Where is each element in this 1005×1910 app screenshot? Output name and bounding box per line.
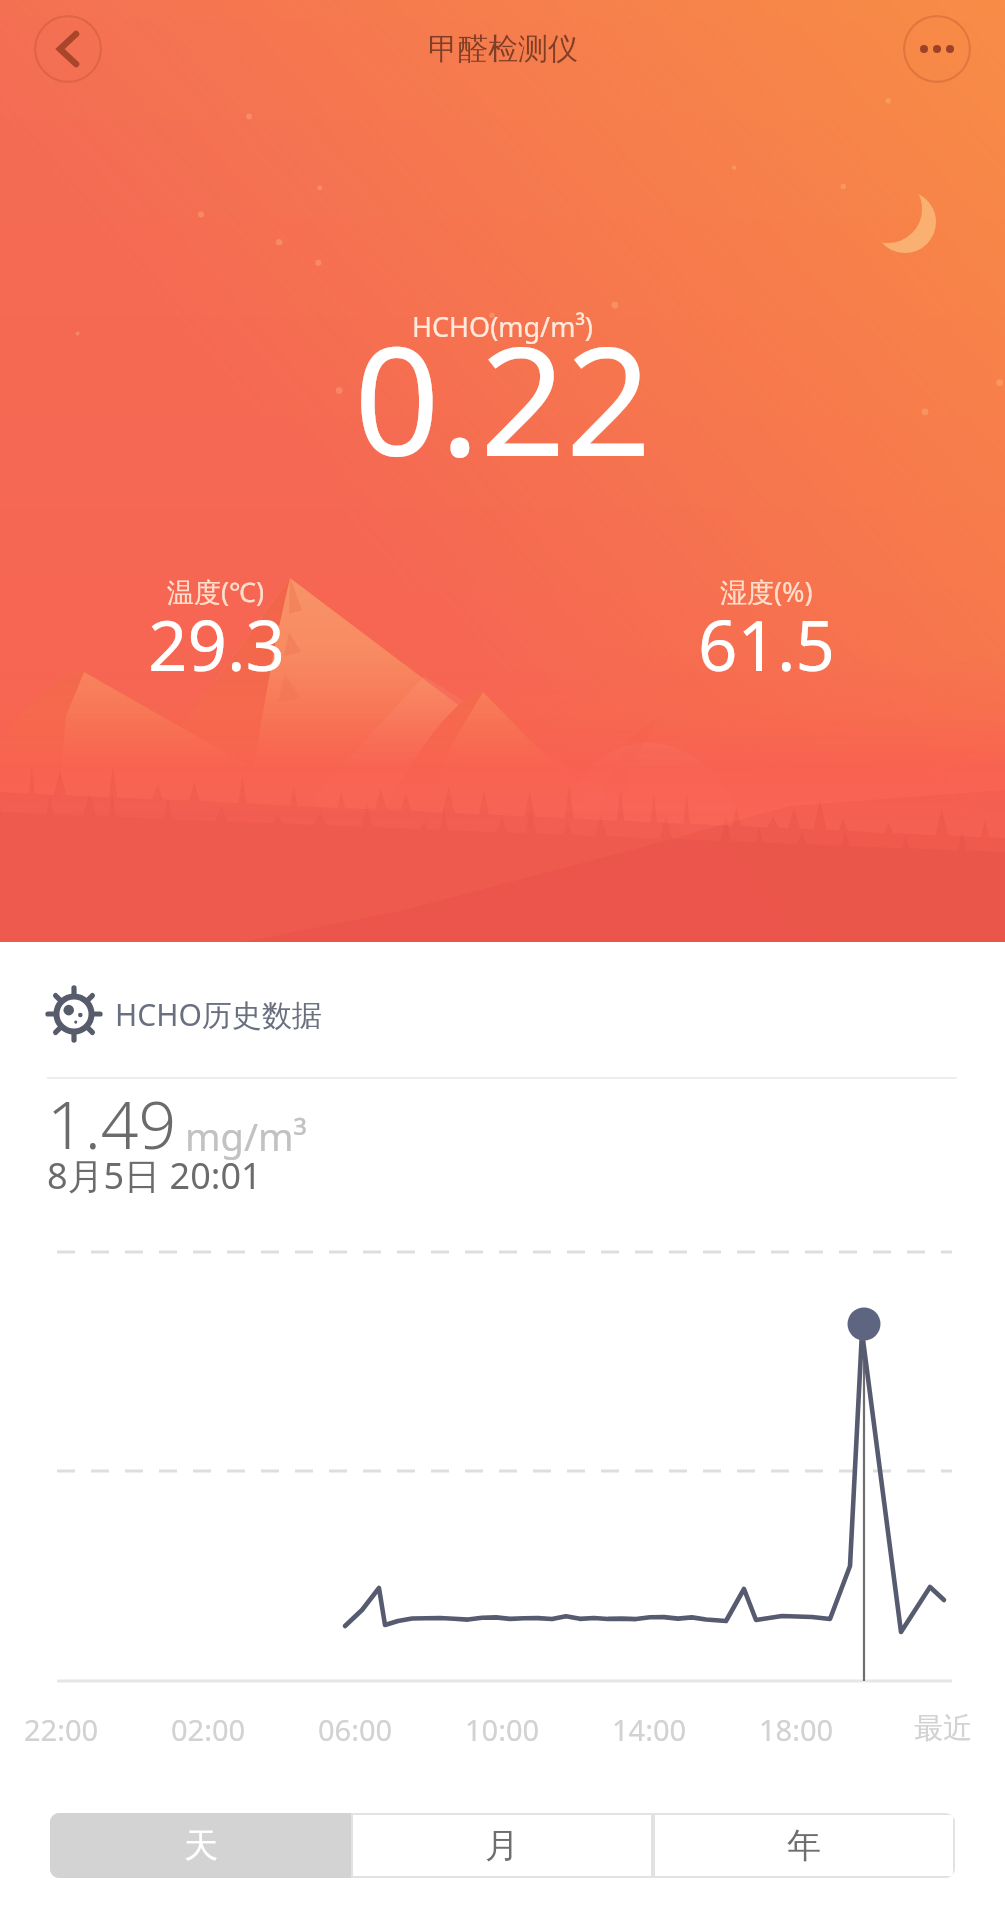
staticText: 14:00 [612,1710,687,1749]
staticText: 22:00 [24,1710,99,1749]
staticText: 最近 [914,1710,972,1747]
staticText: 月 [485,1824,519,1867]
staticText: 湿度(%) [720,573,813,610]
button[interactable]: More options [903,15,971,83]
staticText: 年 [787,1824,821,1867]
button[interactable]: 月 [353,1815,651,1876]
staticText: HCHO历史数据 [115,994,322,1035]
button[interactable]: HCHO历史数据 [40,975,380,1045]
staticText: 61.5 [698,597,835,691]
staticText: 1.49 [47,1078,177,1168]
staticText: 06:00 [318,1710,393,1749]
staticText: 29.3 [148,597,285,691]
staticText: HCHO(mg/m³) [412,308,593,345]
staticText: 02:00 [171,1710,246,1749]
staticText: 温度(℃) [167,573,265,610]
staticText: 天 [184,1824,218,1867]
staticText: 18:00 [759,1710,834,1749]
button[interactable]: 年 [655,1815,953,1876]
staticText: 10:00 [465,1710,540,1749]
staticText: 0.22 [354,296,652,500]
staticText: 甲醛检测仪 [428,30,578,68]
staticText: 8月5日 20:01 [47,1151,262,1200]
button[interactable]: 天 [50,1813,351,1878]
button[interactable]: Back [34,15,102,83]
staticText: mg/m³ [185,1110,307,1162]
